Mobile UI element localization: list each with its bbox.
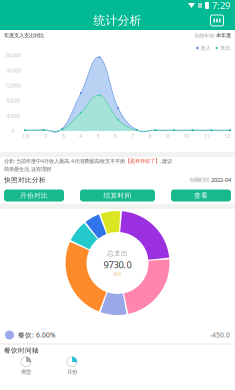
staticText: 当前年度中4月收入最高, 4月消费最高!收支不平衡	[16, 157, 125, 165]
button[interactable]: 月份对比	[4, 189, 64, 201]
staticText: 统计分析	[93, 13, 141, 28]
staticText: -450.0	[210, 331, 230, 339]
staticText: 总支出	[107, 249, 128, 257]
staticText: 9730.0	[103, 258, 131, 271]
staticText: 3	[62, 132, 65, 140]
staticText: 查看	[194, 191, 208, 200]
staticText: 11	[204, 132, 210, 140]
button[interactable]: 餐饮: 6.00%	[0, 327, 235, 343]
staticText: 6	[114, 132, 117, 140]
staticText: 20,000	[5, 52, 21, 59]
staticText: 结算时间	[103, 191, 131, 200]
button[interactable]: 结算时间	[80, 189, 155, 201]
staticText: 4	[79, 132, 82, 140]
staticText: 2	[44, 132, 47, 140]
staticText: 10	[183, 132, 189, 140]
staticText: 简单爱生活, 这有理财	[4, 165, 51, 173]
staticText: 月份	[67, 369, 77, 375]
staticText: 5	[96, 132, 99, 140]
staticText: 8,000	[6, 97, 19, 104]
staticText: 16,000	[5, 67, 21, 74]
staticText: 快照对比分析	[4, 176, 46, 184]
staticText: 年度支入支出对比	[4, 32, 44, 39]
staticText: 收入	[201, 45, 211, 51]
button[interactable]: 查看	[171, 189, 231, 201]
staticText: 支出	[220, 45, 230, 51]
staticText: 9	[166, 132, 169, 140]
staticText: 当前年份:	[194, 32, 216, 39]
staticText: 支出	[113, 272, 121, 277]
staticText: 12	[224, 132, 230, 140]
staticText: 【盈有存款了】	[125, 158, 160, 164]
staticText: 餐饮: 6.00%	[18, 331, 56, 339]
staticText: 12,000	[5, 82, 21, 89]
staticText: 月份对比	[20, 191, 48, 200]
staticText: 2022-04	[211, 176, 231, 184]
staticText: 1月	[22, 132, 30, 140]
staticText: 本年度	[216, 32, 231, 39]
button[interactable]: 日历	[205, 11, 229, 29]
staticText: 分析:	[4, 157, 16, 165]
staticText: 7	[131, 132, 134, 140]
staticText: 类型	[21, 369, 31, 375]
staticText: 7:29	[212, 0, 230, 12]
staticText: 当期时间	[189, 177, 211, 183]
staticText: , 建议	[160, 157, 172, 165]
button[interactable]: 月份	[56, 356, 88, 376]
staticText: 8	[148, 132, 151, 140]
button[interactable]: 类型	[10, 356, 42, 376]
staticText: 餐饮时间轴	[4, 346, 39, 355]
staticText: 4,000	[6, 112, 19, 119]
staticText: 0	[11, 127, 14, 134]
